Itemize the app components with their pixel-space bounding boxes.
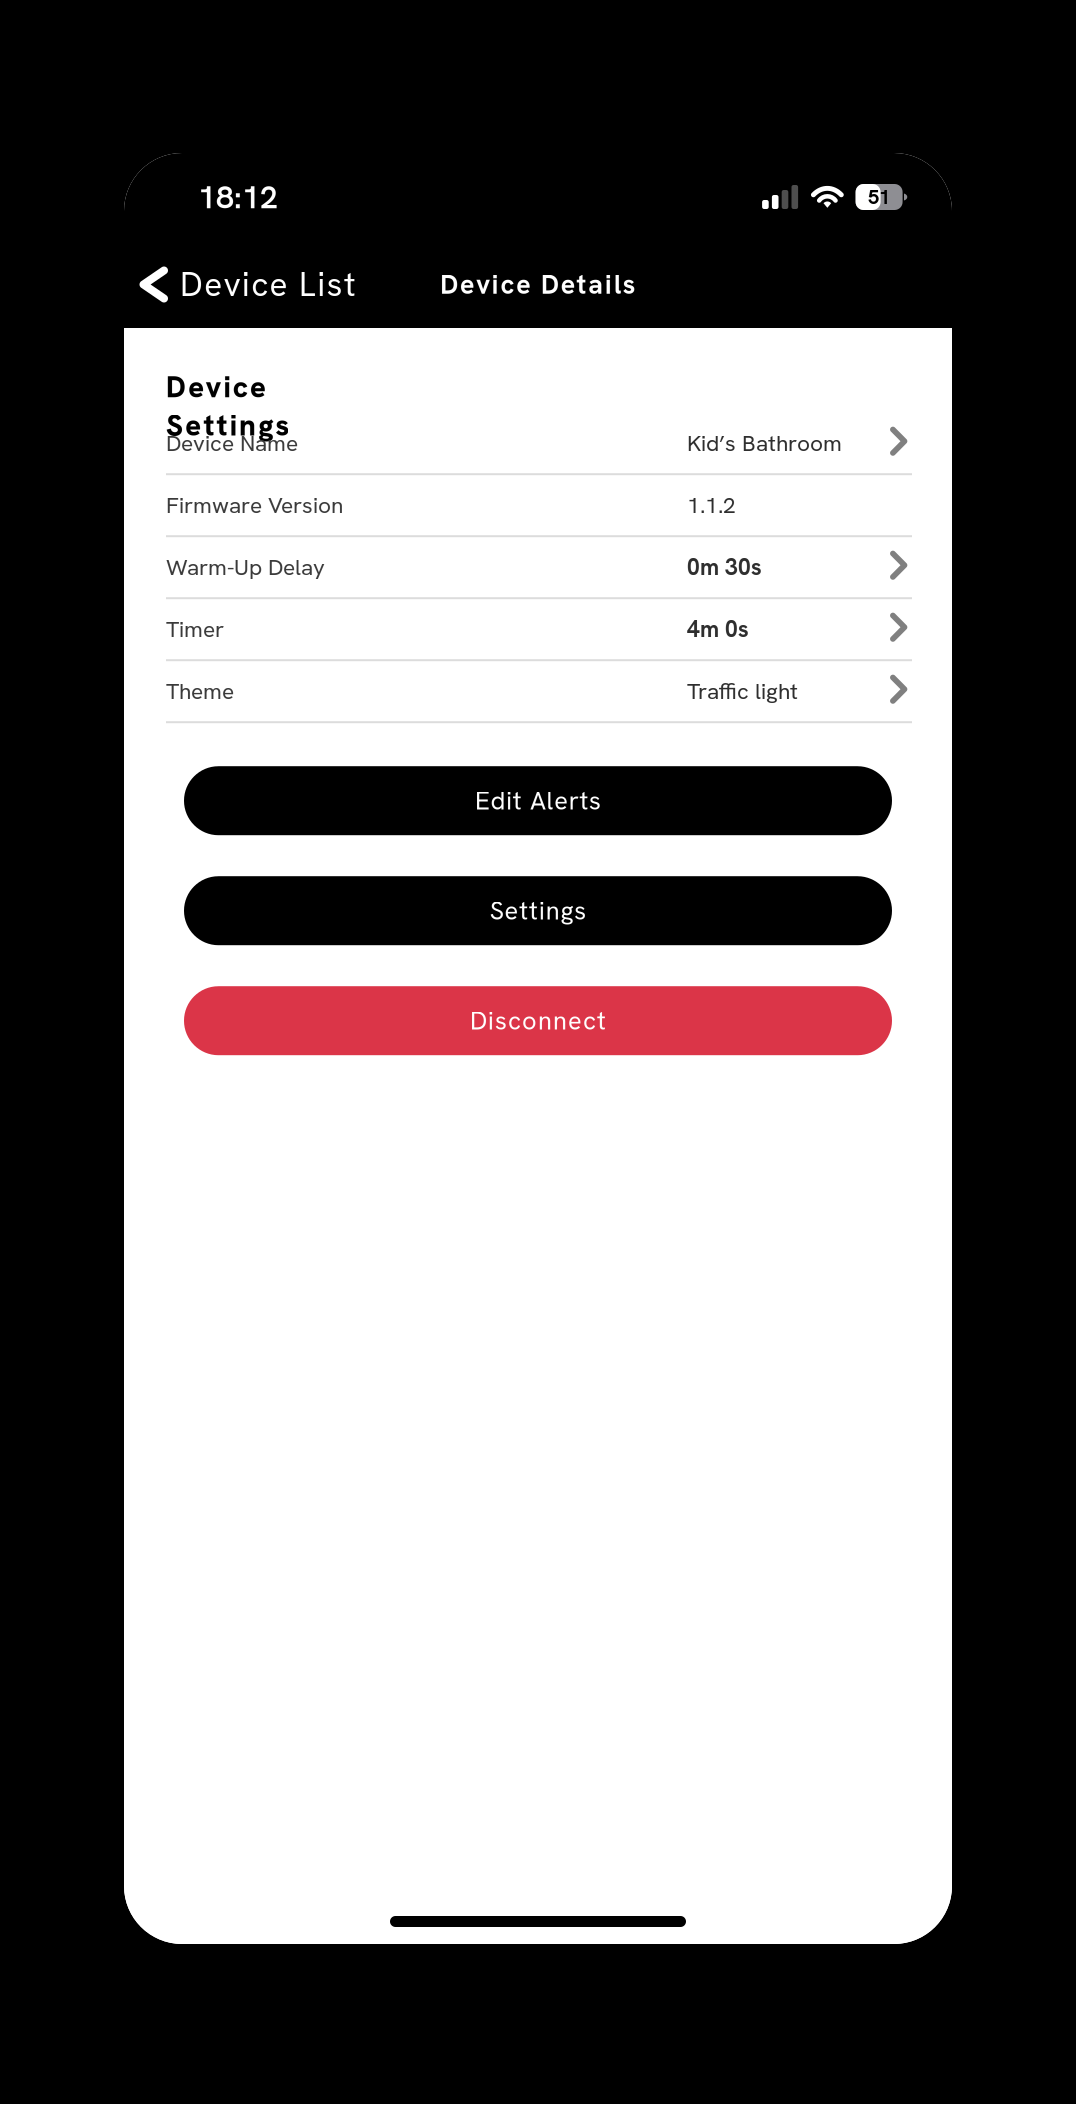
- staticText: 0m 30s: [687, 552, 762, 582]
- button[interactable]: Settings: [184, 876, 892, 945]
- staticText: Disconnect: [470, 1004, 606, 1037]
- staticText: Device Name: [166, 428, 298, 458]
- staticText: Theme: [166, 676, 234, 706]
- staticText: Device Details: [440, 267, 636, 302]
- staticText: Firmware Version: [166, 490, 343, 520]
- staticText: Settings: [490, 894, 586, 927]
- staticText: Device List: [180, 263, 356, 306]
- button[interactable]: Firmware Version: [166, 475, 912, 537]
- staticText: Device Settings: [166, 368, 402, 406]
- staticText: Edit Alerts: [475, 784, 601, 817]
- staticText: 1.1.2: [687, 490, 736, 520]
- staticText: Traffic light: [687, 676, 798, 706]
- button[interactable]: Theme: [166, 661, 912, 723]
- button[interactable]: Warm-Up Delay: [166, 537, 912, 599]
- button[interactable]: Device Name: [166, 413, 912, 475]
- button[interactable]: Edit Alerts: [184, 766, 892, 835]
- button[interactable]: Device List: [124, 258, 584, 311]
- staticText: 4m 0s: [687, 614, 749, 644]
- staticText: 18:12: [198, 176, 278, 218]
- staticText: Warm-Up Delay: [166, 552, 325, 582]
- staticText: Timer: [166, 614, 224, 644]
- staticText: Kid’s Bathroom: [687, 428, 842, 458]
- button[interactable]: Timer: [166, 599, 912, 661]
- button[interactable]: Disconnect: [184, 986, 892, 1055]
- staticText: 51: [868, 184, 890, 210]
